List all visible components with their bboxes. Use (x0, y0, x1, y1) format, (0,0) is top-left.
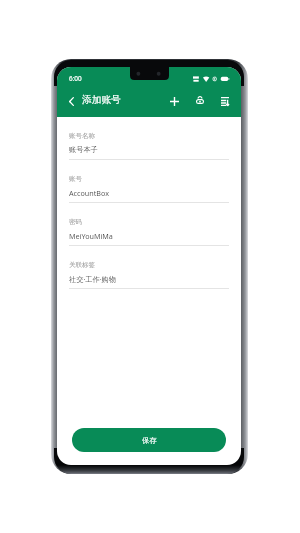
staticText: 账号本子 (69, 145, 98, 154)
button[interactable]: 保存 (72, 428, 226, 452)
staticText: MeiYouMiMa (69, 231, 113, 241)
staticText: 账号名称 (69, 132, 95, 140)
button[interactable]: Add (162, 89, 186, 113)
button[interactable]: Back (59, 89, 83, 113)
staticText: 关联标签 (69, 261, 95, 269)
staticText: 添加账号 (82, 94, 121, 106)
button[interactable]: Sort (213, 89, 237, 113)
button[interactable]: Lock (188, 88, 212, 112)
staticText: 6:00 (69, 74, 82, 83)
staticText: AccountBox (69, 188, 109, 198)
staticText: 账号 (69, 175, 82, 183)
staticText: 保存 (142, 436, 157, 445)
staticText: 社交·工作·购物 (69, 274, 116, 284)
staticText: 密码 (69, 218, 82, 226)
